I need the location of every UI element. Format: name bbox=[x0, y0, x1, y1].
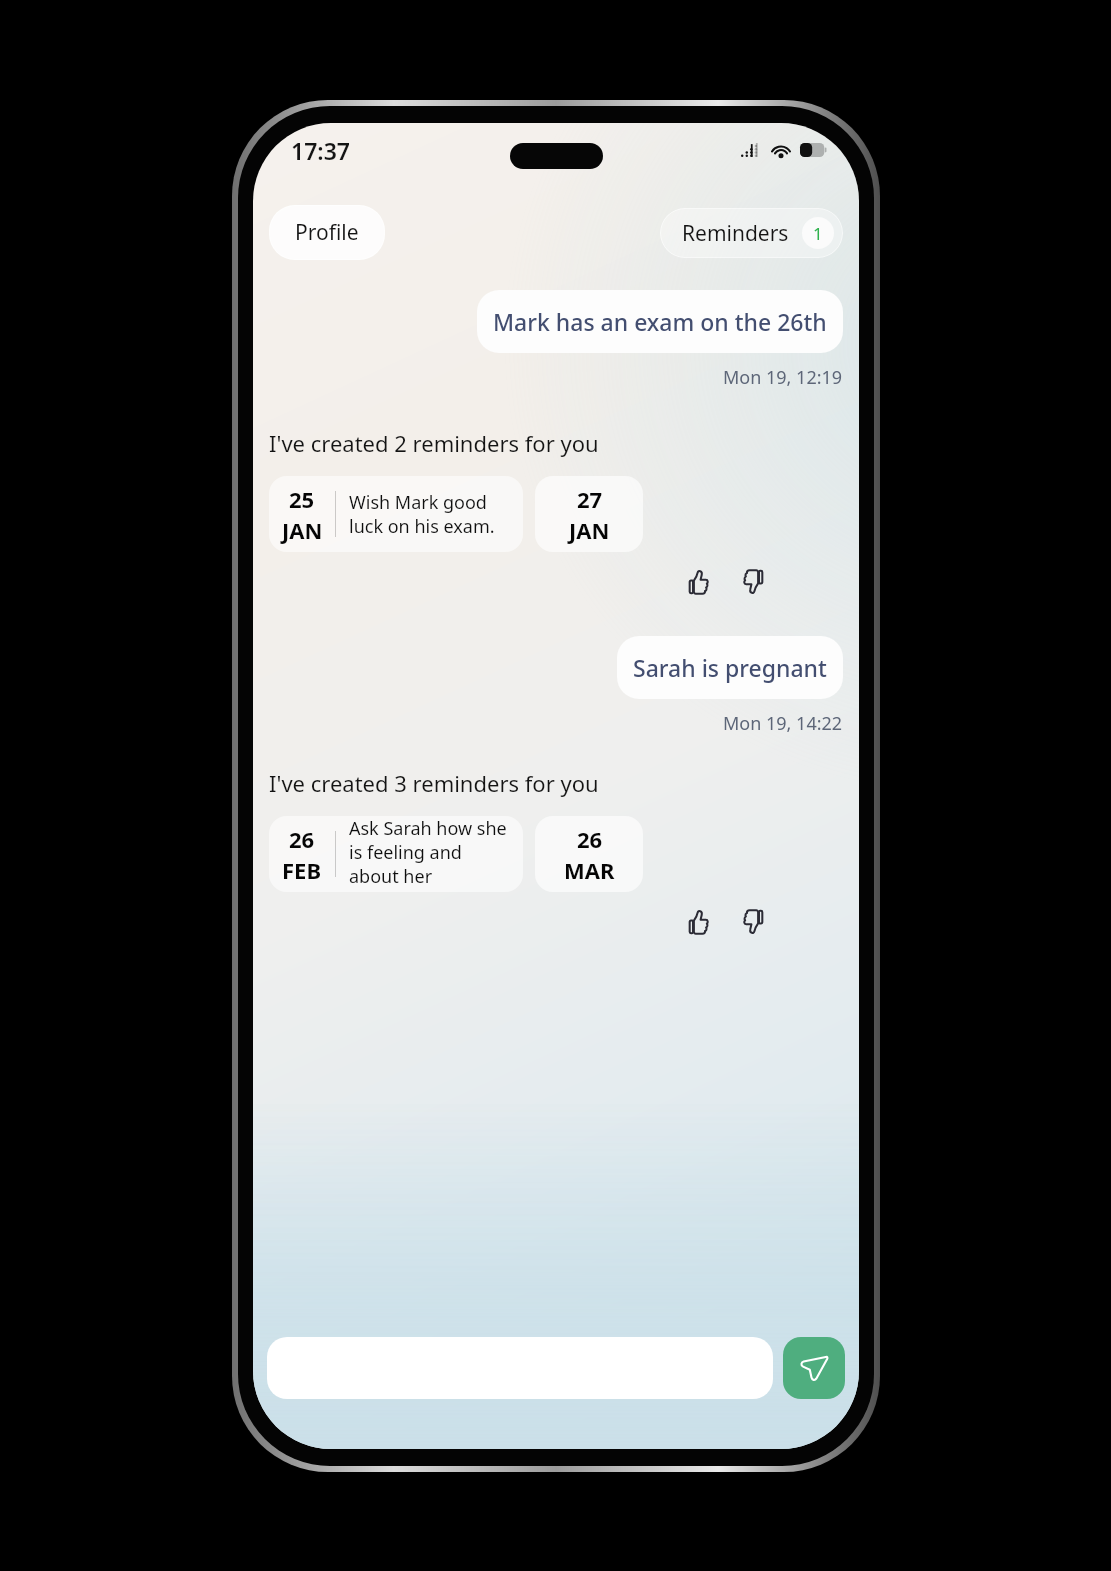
button[interactable]: Thumbs up bbox=[675, 560, 719, 604]
button[interactable]: Thumbs up bbox=[675, 900, 719, 944]
staticText: 17:37 bbox=[291, 135, 350, 166]
button[interactable]: 26 bbox=[269, 816, 523, 892]
staticText: Wish Mark good luck on his exam. bbox=[349, 490, 515, 538]
button[interactable]: Profile bbox=[269, 205, 385, 260]
staticText: Ask Sarah how she is feeling and about h… bbox=[349, 816, 515, 892]
staticText: Mon 19, 12:19 bbox=[723, 365, 843, 390]
staticText: I've created 2 reminders for you bbox=[269, 428, 599, 458]
staticText: 27 bbox=[577, 484, 603, 514]
button[interactable]: Thumbs down bbox=[733, 560, 777, 604]
button[interactable]: Send bbox=[783, 1337, 845, 1399]
staticText: 1 bbox=[813, 222, 823, 245]
staticText: Mark has an exam on the 26th bbox=[493, 306, 827, 337]
staticText: FEB bbox=[282, 855, 322, 885]
button[interactable]: 25 bbox=[269, 476, 523, 552]
staticText: JAN bbox=[282, 515, 323, 545]
button[interactable]: Thumbs down bbox=[733, 900, 777, 944]
button[interactable]: 26 bbox=[535, 816, 643, 892]
staticText: Profile bbox=[295, 218, 359, 247]
button[interactable]: Reminders bbox=[660, 208, 843, 258]
staticText: 26 bbox=[577, 824, 603, 854]
staticText: Mon 19, 14:22 bbox=[723, 711, 843, 736]
staticText: 25 bbox=[289, 484, 315, 514]
button[interactable]: Message input bbox=[267, 1337, 773, 1399]
staticText: Reminders bbox=[682, 219, 789, 248]
button[interactable]: 27 bbox=[535, 476, 643, 552]
staticText: Sarah is pregnant bbox=[633, 652, 827, 683]
button[interactable]: Mark has an exam on the 26th bbox=[477, 290, 843, 353]
staticText: 26 bbox=[289, 824, 315, 854]
staticText: MAR bbox=[564, 855, 615, 885]
button[interactable]: Sarah is pregnant bbox=[617, 636, 843, 699]
staticText: JAN bbox=[569, 515, 610, 545]
staticText: I've created 3 reminders for you bbox=[269, 768, 599, 798]
